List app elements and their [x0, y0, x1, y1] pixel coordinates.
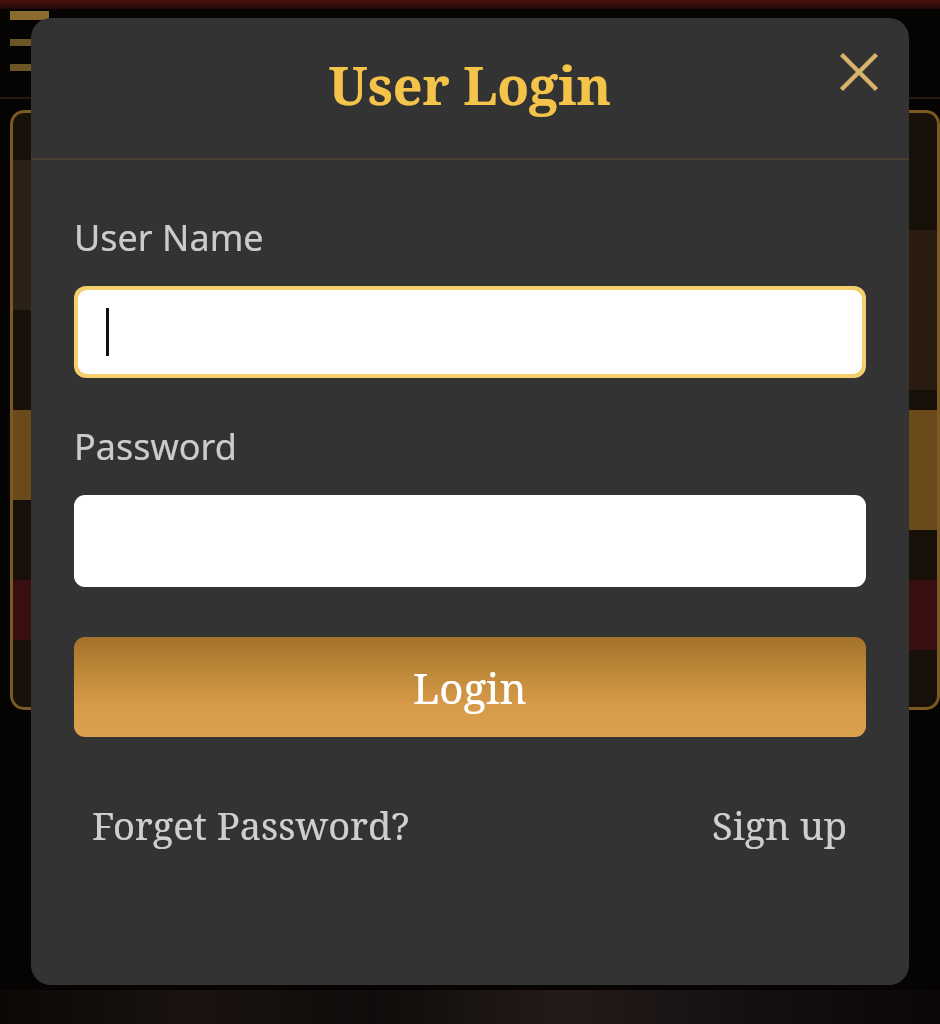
staticText: Sign up — [712, 799, 848, 851]
staticText: User Name — [74, 213, 264, 262]
button[interactable]: Sign up — [708, 795, 852, 855]
staticText: Forget Password? — [92, 799, 410, 851]
button[interactable]: Close — [823, 36, 895, 108]
button[interactable] — [74, 495, 866, 587]
button[interactable]: Forget Password? — [88, 795, 414, 855]
button[interactable] — [78, 290, 862, 374]
staticText: User Login — [31, 49, 909, 120]
staticText: Login — [413, 659, 527, 716]
button[interactable]: Login — [74, 637, 866, 737]
staticText: Password — [74, 422, 237, 471]
